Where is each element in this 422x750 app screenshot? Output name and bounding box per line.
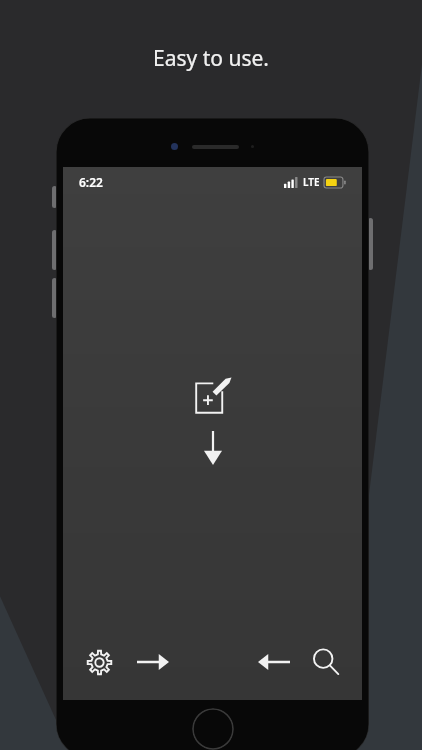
staticText: 6:22: [79, 174, 103, 190]
button[interactable]: Swipe right: [131, 642, 175, 682]
staticText: Easy to use.: [153, 44, 269, 73]
button[interactable]: Search: [306, 642, 346, 682]
button[interactable]: Home: [192, 708, 234, 750]
button[interactable]: New note: [192, 375, 234, 417]
button[interactable]: Settings: [79, 642, 119, 682]
button[interactable]: Swipe left: [252, 642, 296, 682]
staticText: LTE: [303, 175, 320, 189]
